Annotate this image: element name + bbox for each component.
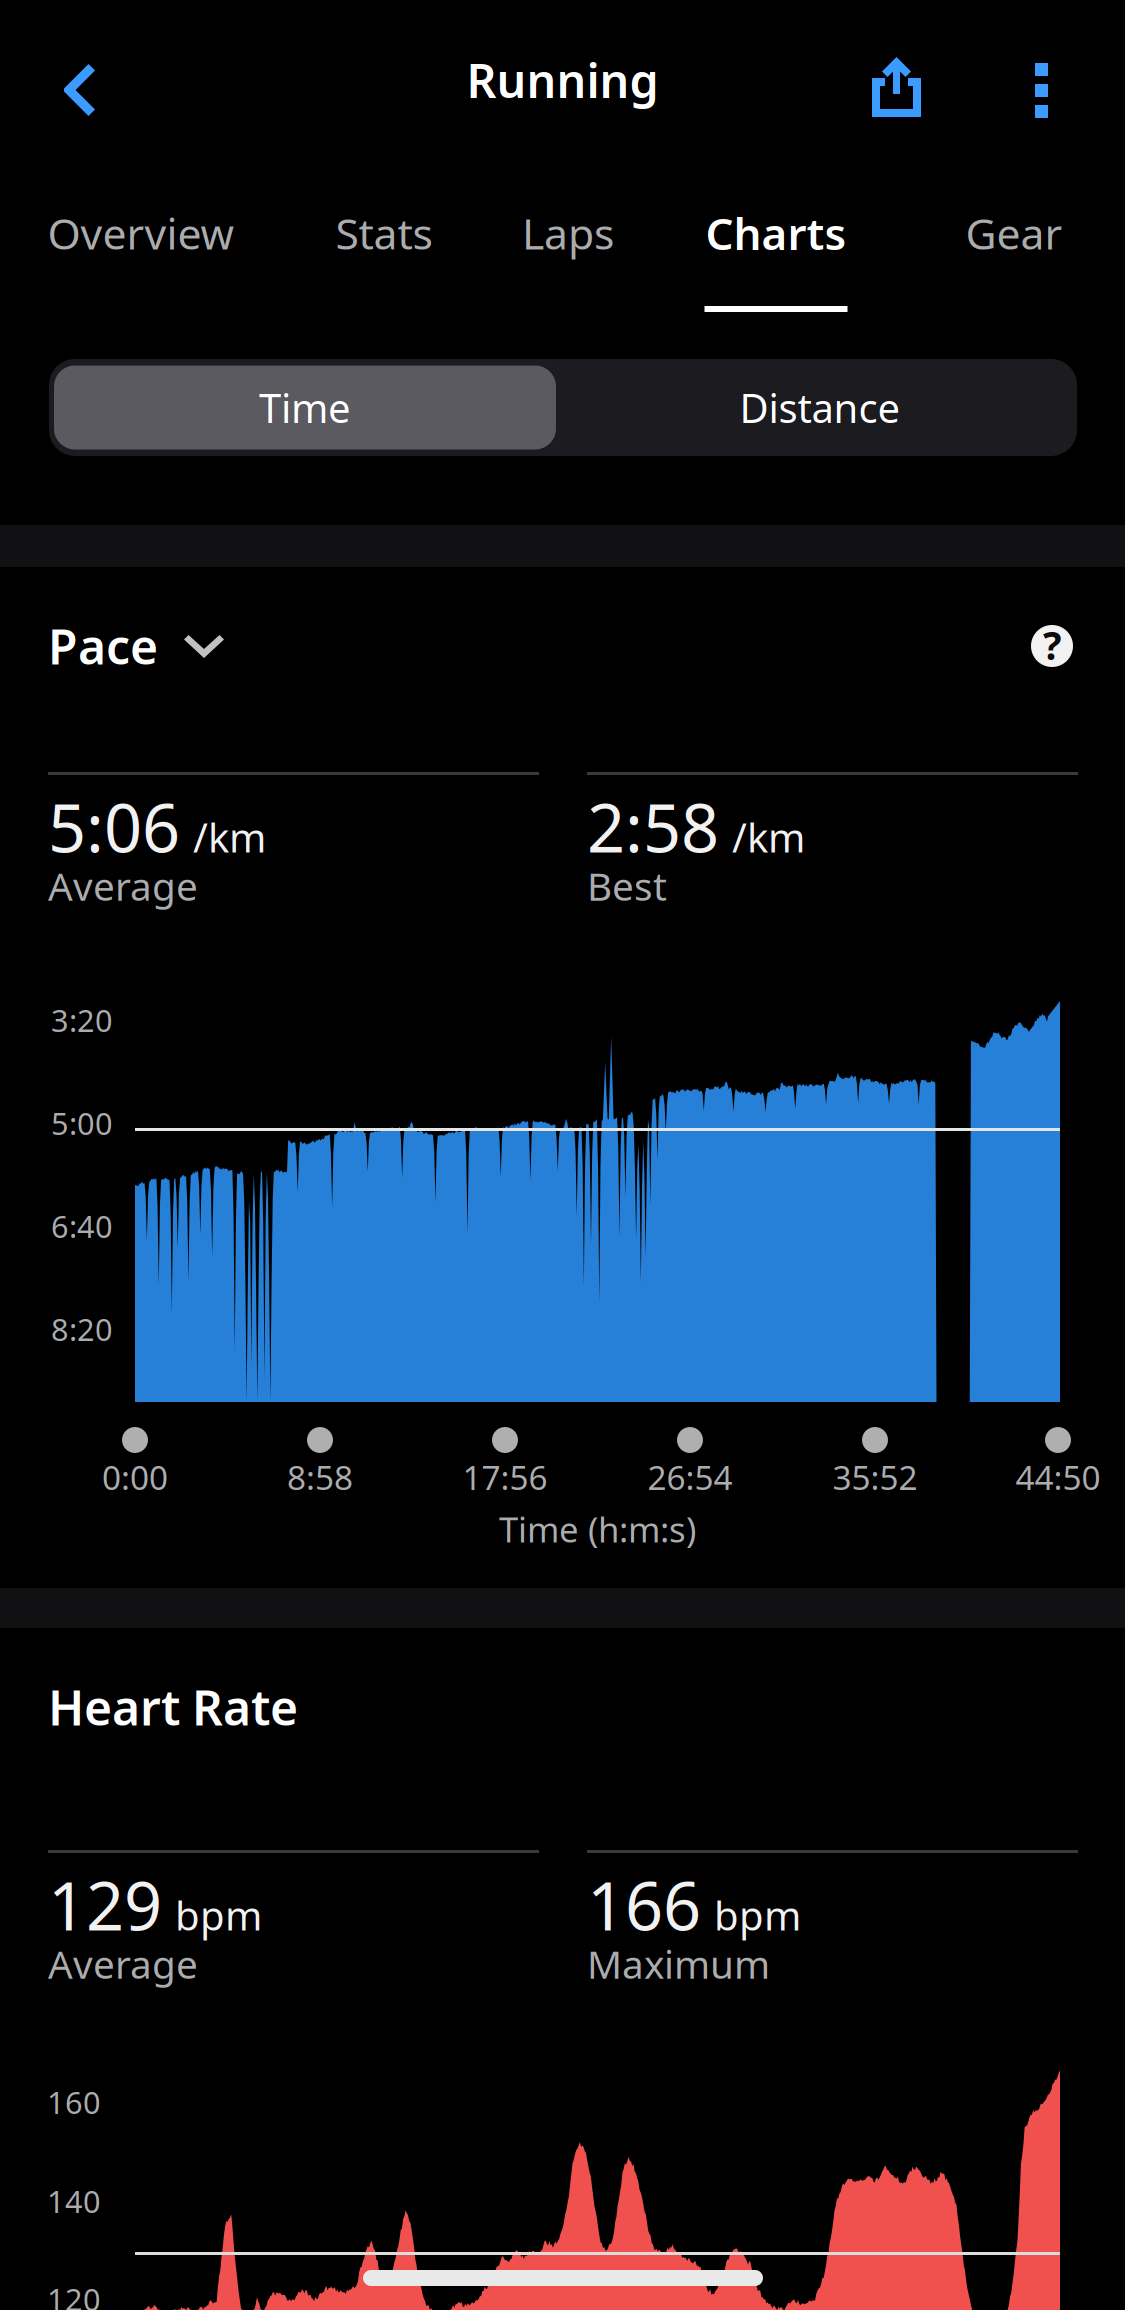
button[interactable]: Charts xyxy=(681,180,871,325)
staticText: 35:52 xyxy=(832,1455,917,1499)
staticText: 26:54 xyxy=(647,1455,732,1499)
button[interactable]: Time xyxy=(49,359,561,456)
staticText: 5:06 xyxy=(48,782,180,871)
staticText: Pace xyxy=(48,614,158,678)
staticText: /km xyxy=(193,810,266,864)
staticText: Time (h:m:s) xyxy=(499,1506,696,1552)
button[interactable]: Distance xyxy=(563,359,1077,456)
staticText: 5:00 xyxy=(51,1103,113,1143)
button[interactable]: Laps xyxy=(493,180,643,325)
staticText: ? xyxy=(1043,619,1061,671)
button[interactable]: Back xyxy=(0,0,130,160)
staticText: Running xyxy=(466,49,658,111)
staticText: Distance xyxy=(739,381,900,434)
staticText: 17:56 xyxy=(462,1455,547,1499)
staticText: 129 xyxy=(48,1860,162,1949)
staticText: 166 xyxy=(587,1860,701,1949)
staticText: Laps xyxy=(522,205,614,261)
staticText: Heart Rate xyxy=(48,1675,298,1739)
button[interactable]: Pace xyxy=(48,587,298,697)
staticText: 6:40 xyxy=(51,1206,113,1246)
staticText: 8:20 xyxy=(51,1309,113,1349)
button[interactable]: Stats xyxy=(304,180,464,325)
staticText: Maximum xyxy=(587,1938,770,1989)
staticText: 3:20 xyxy=(51,1000,113,1040)
staticText: 0:00 xyxy=(102,1455,168,1499)
staticText: Overview xyxy=(47,205,234,261)
staticText: /km xyxy=(732,810,805,864)
staticText: Average xyxy=(48,1938,198,1989)
staticText: 160 xyxy=(47,2082,101,2122)
staticText: 120 xyxy=(47,2279,101,2310)
staticText: 140 xyxy=(47,2181,101,2221)
staticText: Best xyxy=(587,860,667,911)
staticText: Gear xyxy=(965,205,1062,261)
staticText: Average xyxy=(48,860,198,911)
staticText: bpm xyxy=(714,1888,801,1942)
staticText: Stats xyxy=(335,205,432,261)
staticText: Time xyxy=(259,381,351,434)
button[interactable]: Share xyxy=(828,0,962,160)
staticText: 2:58 xyxy=(587,782,719,871)
button[interactable]: Overview xyxy=(21,180,261,325)
button[interactable]: Help xyxy=(1009,603,1095,689)
staticText: Charts xyxy=(705,204,846,262)
button[interactable]: Gear xyxy=(934,180,1094,325)
staticText: 44:50 xyxy=(1015,1455,1100,1499)
staticText: bpm xyxy=(175,1888,262,1942)
button[interactable]: More options xyxy=(977,0,1107,160)
staticText: 8:58 xyxy=(287,1455,353,1499)
